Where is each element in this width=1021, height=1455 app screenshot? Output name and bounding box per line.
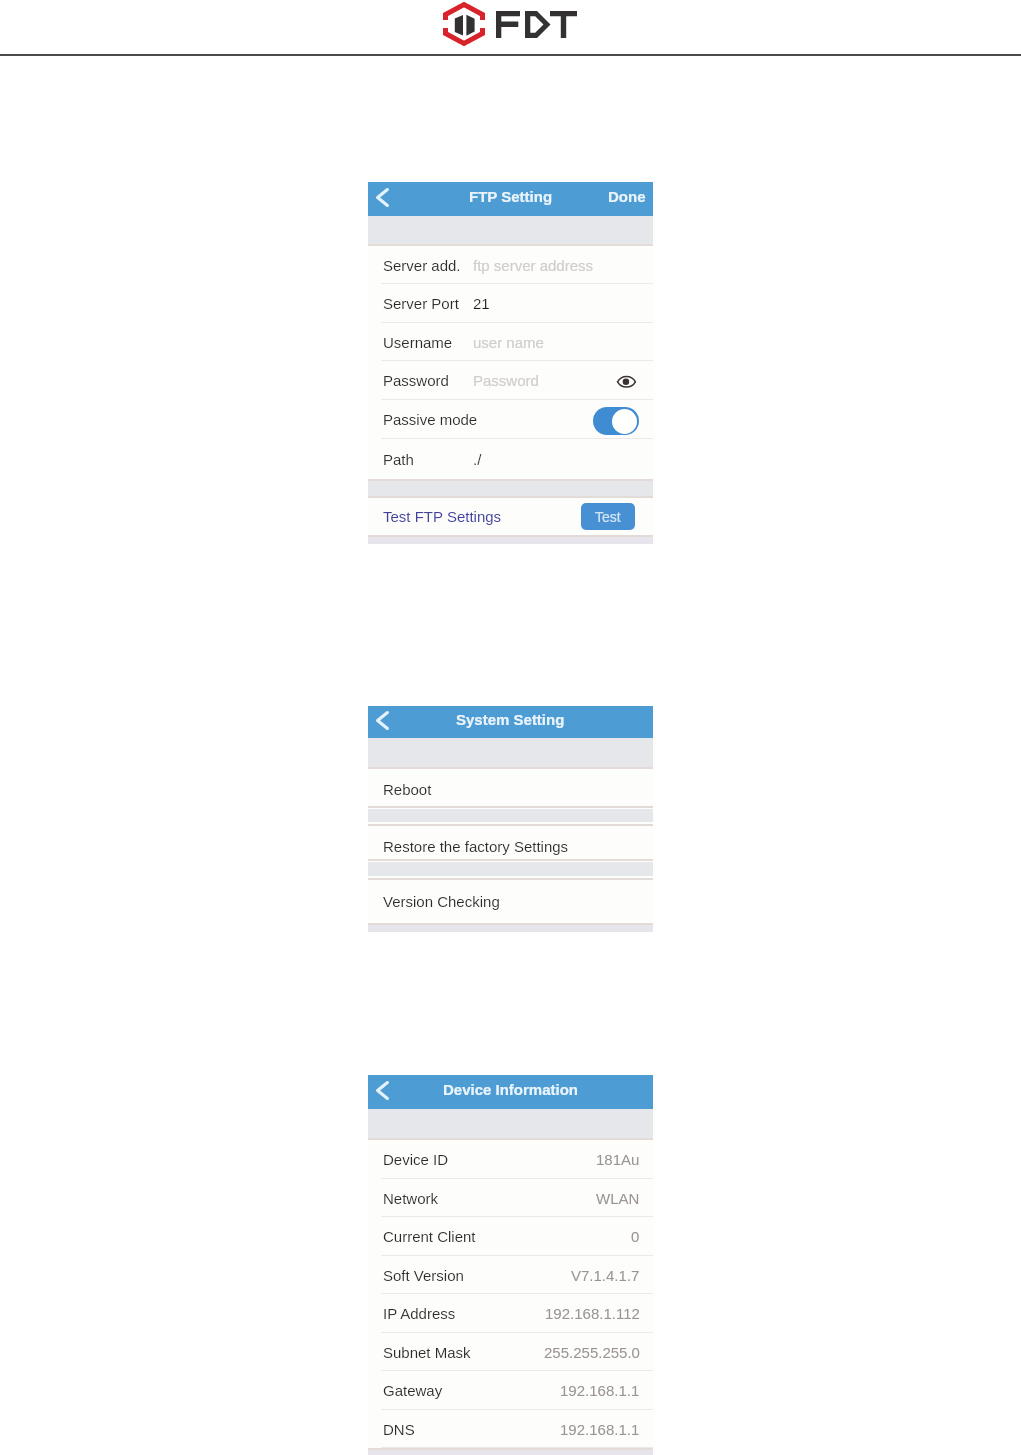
staticText: Subnet Mask — [383, 1344, 471, 1361]
button[interactable]: Username — [368, 323, 653, 361]
staticText: 0 — [631, 1228, 640, 1245]
staticText: 192.168.1.1 — [560, 1382, 640, 1399]
staticText: Path — [383, 451, 414, 468]
staticText: 21 — [473, 295, 490, 312]
button[interactable]: DNS — [368, 1410, 653, 1448]
button[interactable]: Restore the factory Settings — [368, 826, 653, 859]
staticText: 192.168.1.112 — [545, 1305, 640, 1322]
staticText: Device Information — [443, 1081, 579, 1098]
button[interactable]: Device ID — [368, 1140, 653, 1179]
button[interactable]: Gateway — [368, 1371, 653, 1410]
staticText: Test — [595, 509, 621, 525]
button[interactable]: Passive mode — [593, 407, 639, 435]
button[interactable]: Version Checking — [368, 880, 653, 923]
button[interactable]: Path — [368, 439, 653, 479]
button[interactable]: IP Address — [368, 1294, 653, 1333]
button[interactable]: Current Client — [368, 1217, 653, 1256]
button[interactable]: Test FTP Settings — [383, 508, 502, 525]
staticText: Passive mode — [383, 411, 478, 428]
button[interactable]: Subnet Mask — [368, 1333, 653, 1371]
button[interactable]: Server add. — [368, 246, 653, 284]
button[interactable]: Back — [369, 707, 395, 733]
staticText: user name — [473, 334, 544, 351]
staticText: 255.255.255.0 — [544, 1344, 640, 1361]
staticText: V7.1.4.1.7 — [571, 1267, 640, 1284]
staticText: Soft Version — [383, 1267, 464, 1284]
button[interactable]: Soft Version — [368, 1256, 653, 1294]
staticText: Password — [473, 372, 539, 389]
staticText: Current Client — [383, 1228, 476, 1245]
button[interactable]: Test — [581, 503, 635, 530]
staticText: Test FTP Settings — [383, 508, 502, 525]
staticText: Restore the factory Settings — [383, 838, 569, 855]
button[interactable]: Network — [368, 1179, 653, 1217]
staticText: Done — [608, 188, 646, 205]
staticText: Version Checking — [383, 893, 500, 910]
staticText: ftp server address — [473, 257, 594, 274]
staticText: 181Au — [596, 1151, 640, 1168]
staticText: Server Port — [383, 295, 459, 312]
staticText: DNS — [383, 1421, 415, 1438]
button[interactable]: Server Port — [368, 284, 653, 323]
staticText: Username — [383, 334, 453, 351]
staticText: FTP Setting — [469, 188, 553, 205]
staticText: Password — [383, 372, 449, 389]
button[interactable]: Done — [608, 188, 646, 205]
staticText: 192.168.1.1 — [560, 1421, 640, 1438]
staticText: Network — [383, 1190, 439, 1207]
staticText: Server add. — [383, 257, 461, 274]
staticText: IP Address — [383, 1305, 456, 1322]
staticText: Reboot — [383, 781, 432, 798]
other: Show password — [617, 375, 636, 388]
staticText: System Setting — [456, 711, 565, 728]
button[interactable]: Back — [369, 1077, 395, 1103]
button[interactable]: Passive mode — [368, 400, 653, 439]
staticText: ./ — [473, 451, 482, 468]
button[interactable]: Password — [368, 361, 653, 400]
button[interactable]: Back — [369, 184, 395, 210]
staticText: WLAN — [596, 1190, 640, 1207]
button[interactable]: Reboot — [368, 769, 653, 806]
staticText: Gateway — [383, 1382, 443, 1399]
staticText: Device ID — [383, 1151, 449, 1168]
